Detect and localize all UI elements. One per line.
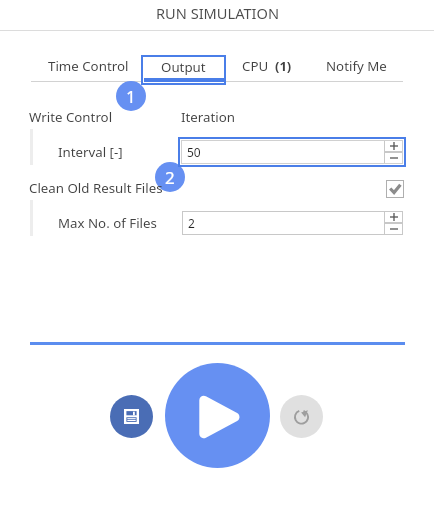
- staticText: Output: [161, 58, 206, 76]
- button[interactable]: Run simulation: [165, 363, 270, 468]
- staticText: Interval [-]: [58, 143, 123, 161]
- button[interactable]: Reset: [280, 395, 323, 438]
- button[interactable]: Decrement: [384, 223, 403, 235]
- staticText: 2: [165, 166, 175, 189]
- staticText: Clean Old Result Files: [29, 179, 163, 197]
- button[interactable]: Save: [110, 395, 153, 438]
- staticText: Time Control: [48, 57, 129, 75]
- button[interactable]: CPU: [234, 53, 300, 79]
- button[interactable]: Notify Me: [318, 53, 395, 79]
- button[interactable]: Output: [141, 55, 226, 85]
- staticText: RUN SIMULATION: [156, 3, 279, 23]
- button[interactable]: 2: [182, 211, 403, 235]
- staticText: (1): [275, 57, 292, 75]
- button[interactable]: Increment: [384, 211, 403, 223]
- staticText: Write Control: [29, 108, 113, 126]
- button[interactable]: Clean old result files: [386, 180, 404, 198]
- staticText: 2: [188, 215, 195, 231]
- staticText: 1: [126, 85, 136, 108]
- button[interactable]: Increment: [384, 140, 403, 152]
- button[interactable]: 50: [178, 137, 406, 167]
- button[interactable]: Time Control: [40, 53, 137, 79]
- staticText: CPU: [242, 57, 269, 75]
- button[interactable]: Decrement: [384, 152, 403, 164]
- staticText: Max No. of Files: [58, 214, 157, 232]
- staticText: Notify Me: [326, 57, 387, 75]
- staticText: Iteration: [181, 108, 235, 126]
- staticText: 50: [187, 144, 201, 160]
